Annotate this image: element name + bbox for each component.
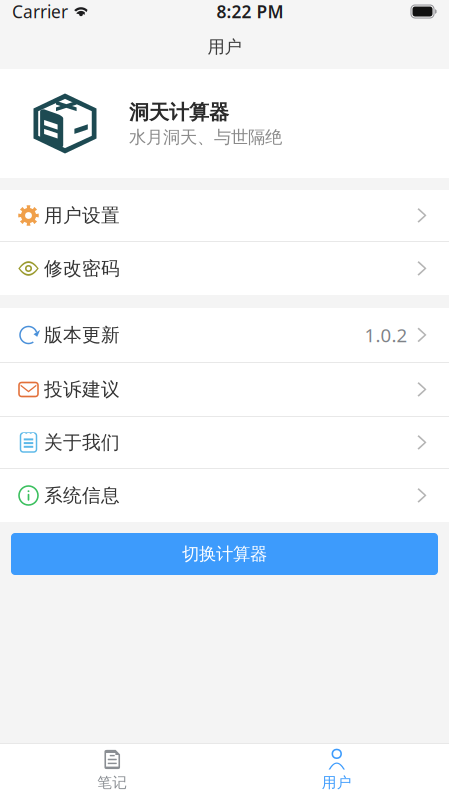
staticText: 系统信息: [44, 484, 120, 507]
staticText: 关于我们: [44, 431, 120, 454]
button[interactable]: 修改密码: [0, 242, 449, 295]
button[interactable]: 投诉建议: [0, 363, 449, 417]
staticText: 水月洞天、与世隔绝: [129, 127, 282, 148]
button[interactable]: 关于我们: [0, 417, 449, 469]
staticText: 用户设置: [44, 204, 120, 227]
button[interactable]: 用户: [224, 743, 449, 797]
button[interactable]: 切换计算器: [11, 533, 438, 575]
staticText: 用户: [207, 36, 241, 58]
button[interactable]: 笔记: [0, 743, 224, 797]
staticText: 版本更新: [44, 323, 120, 346]
button[interactable]: 版本更新: [0, 308, 449, 363]
staticText: 用户: [322, 773, 352, 791]
button[interactable]: 系统信息: [0, 469, 449, 522]
staticText: 修改密码: [44, 257, 120, 280]
button[interactable]: 用户设置: [0, 190, 449, 242]
staticText: Carrier: [12, 0, 68, 23]
staticText: 切换计算器: [182, 543, 267, 565]
staticText: 洞天计算器: [129, 100, 229, 125]
staticText: 8:22 PM: [216, 0, 283, 23]
staticText: 笔记: [97, 773, 127, 791]
staticText: 1.0.2: [364, 323, 407, 347]
staticText: 投诉建议: [44, 378, 120, 401]
